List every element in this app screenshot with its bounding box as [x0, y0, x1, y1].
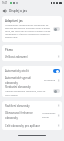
staticText: Udržuje obrazovku zapnutou, když se na n… — [5, 90, 46, 97]
button[interactable]: Rozlišení obrazovky — [2, 101, 62, 110]
staticText: Rozlišení obrazovky — [5, 104, 57, 108]
staticText: 9:41 — [2, 1, 8, 5]
staticText: Automaticky vybrat — [42, 112, 56, 119]
staticText: Displej a jas — [9, 9, 27, 13]
staticText: Obnovovací frekvence obrazovky — [5, 111, 42, 120]
staticText: Automaticky upravovat jas obrazovky na z… — [5, 24, 51, 39]
button[interactable]: Adaptivní jas — [2, 16, 62, 42]
button[interactable]: Automatické vypnutí obrazovky — [2, 75, 62, 85]
button[interactable]: Back — [1, 7, 8, 14]
staticText: 30 sekund — [44, 79, 56, 82]
button[interactable]: Automaticky otočit — [2, 66, 62, 75]
staticText: Automatické vypnutí obrazovky — [5, 76, 44, 85]
button[interactable]: Sledování obrazovky — [53, 89, 60, 93]
staticText: Velikost zobrazení — [5, 55, 57, 59]
staticText: Automaticky otočit — [5, 69, 51, 73]
button[interactable]: Automaticky otočit — [53, 69, 60, 73]
staticText: Písmo — [5, 48, 13, 52]
button[interactable]: Velikost zobrazení — [2, 52, 62, 61]
button[interactable]: Sledování obrazovky — [2, 85, 62, 97]
staticText: Adaptivní jas — [5, 19, 23, 23]
button[interactable]: Adaptivní jas — [53, 27, 60, 31]
button[interactable]: Celé obrazovky pro aplikace — [2, 121, 62, 130]
staticText: Sledování obrazovky — [5, 85, 31, 89]
staticText: Celé obrazovky pro aplikace — [5, 124, 57, 128]
button[interactable]: Obnovovací frekvence obrazovky — [2, 110, 62, 121]
